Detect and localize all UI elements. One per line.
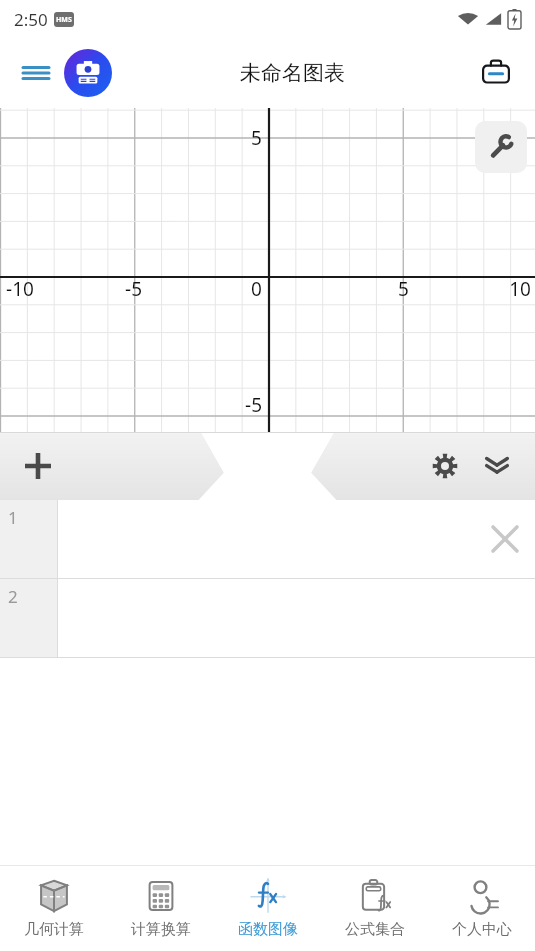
button[interactable]: 2: [0, 579, 535, 657]
button[interactable]: 公式集合: [321, 865, 428, 951]
button[interactable]: Scan: [64, 49, 112, 97]
button[interactable]: Collapse: [473, 442, 521, 490]
staticText: 计算换算: [131, 920, 191, 939]
staticText: 公式集合: [345, 920, 405, 939]
staticText: 0: [251, 276, 262, 302]
button[interactable]: 1: [0, 500, 535, 578]
staticText: 个人中心: [452, 920, 512, 939]
button[interactable]: Menu: [14, 51, 58, 95]
button[interactable]: Graph settings: [475, 121, 527, 173]
staticText: -10: [6, 276, 34, 302]
staticText: -5: [245, 392, 262, 418]
staticText: -5: [125, 276, 142, 302]
staticText: 1: [8, 506, 18, 529]
staticText: 5: [251, 125, 262, 151]
button[interactable]: Toolbox: [473, 50, 519, 96]
button[interactable]: Settings: [421, 442, 469, 490]
staticText: 10: [509, 276, 531, 302]
staticText: 函数图像: [238, 920, 298, 939]
button[interactable]: Clear: [483, 517, 527, 561]
button[interactable]: 计算换算: [107, 865, 214, 951]
staticText: 5: [398, 276, 409, 302]
button[interactable]: 函数图像: [214, 865, 321, 951]
button[interactable]: 个人中心: [428, 865, 535, 951]
staticText: 2: [8, 585, 18, 608]
button[interactable]: Add expression: [14, 442, 62, 490]
button[interactable]: 几何计算: [0, 865, 107, 951]
staticText: 未命名图表: [240, 60, 345, 86]
staticText: HMS: [56, 15, 72, 25]
staticText: 2:50: [14, 8, 48, 31]
staticText: 几何计算: [24, 920, 84, 939]
